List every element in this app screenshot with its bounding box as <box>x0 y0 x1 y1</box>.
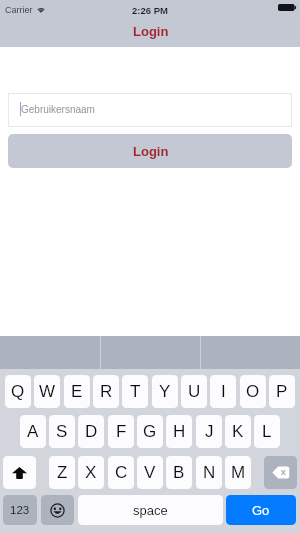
staticText: N <box>203 463 216 482</box>
button[interactable]: E <box>64 375 90 408</box>
button[interactable]: W <box>34 375 60 408</box>
button[interactable]: N <box>196 456 222 489</box>
staticText: A <box>27 422 39 441</box>
button[interactable]: X <box>78 456 104 489</box>
staticText: Q <box>11 382 25 401</box>
button[interactable]: R <box>93 375 119 408</box>
staticText: C <box>115 463 128 482</box>
staticText: X <box>85 463 97 482</box>
button[interactable]: O <box>240 375 266 408</box>
button[interactable]: 123 <box>3 495 37 525</box>
staticText: G <box>143 422 157 441</box>
button[interactable]: D <box>78 415 104 448</box>
button[interactable]: T <box>122 375 148 408</box>
staticText: Go <box>252 503 270 518</box>
button[interactable]: J <box>196 415 222 448</box>
staticText: V <box>144 463 156 482</box>
staticText: H <box>173 422 186 441</box>
staticText: L <box>262 422 272 441</box>
staticText: 2:26 PM <box>132 5 168 16</box>
staticText: F <box>116 422 127 441</box>
button[interactable]: P <box>269 375 295 408</box>
button[interactable]: L <box>254 415 280 448</box>
staticText: Z <box>57 463 68 482</box>
staticText: 123 <box>10 504 30 517</box>
button[interactable]: K <box>225 415 251 448</box>
staticText: J <box>205 422 214 441</box>
staticText: M <box>231 463 246 482</box>
staticText: space <box>133 503 168 518</box>
staticText: K <box>232 422 244 441</box>
staticText: Login <box>133 144 169 159</box>
button[interactable]: G <box>137 415 163 448</box>
button[interactable]: Backspace <box>264 456 297 489</box>
button[interactable]: Gebruikersnaam <box>8 93 292 127</box>
staticText: E <box>71 382 83 401</box>
staticText: T <box>130 382 141 401</box>
staticText: Carrier <box>5 5 33 15</box>
button[interactable]: Emoji <box>41 495 74 525</box>
button[interactable]: B <box>166 456 192 489</box>
button[interactable]: M <box>225 456 251 489</box>
button[interactable]: Login <box>8 134 292 168</box>
button[interactable]: H <box>166 415 192 448</box>
button[interactable]: A <box>20 415 46 448</box>
button[interactable]: S <box>49 415 75 448</box>
staticText: I <box>221 382 226 401</box>
staticText: P <box>276 382 288 401</box>
staticText: U <box>188 382 201 401</box>
button[interactable]: U <box>181 375 207 408</box>
button[interactable]: I <box>210 375 236 408</box>
staticText: R <box>100 382 113 401</box>
staticText: W <box>39 382 56 401</box>
staticText: Gebruikersnaam <box>21 104 95 115</box>
button[interactable]: Y <box>152 375 178 408</box>
button[interactable]: F <box>108 415 134 448</box>
staticText: Y <box>159 382 171 401</box>
button[interactable]: Q <box>5 375 31 408</box>
button[interactable]: C <box>108 456 134 489</box>
staticText: S <box>56 422 68 441</box>
staticText: D <box>85 422 98 441</box>
button[interactable]: Shift <box>3 456 36 489</box>
staticText: O <box>246 382 260 401</box>
button[interactable]: V <box>137 456 163 489</box>
button[interactable]: space <box>78 495 223 525</box>
button[interactable]: Go <box>226 495 296 525</box>
button[interactable]: Z <box>49 456 75 489</box>
staticText: B <box>173 463 185 482</box>
staticText: Login <box>133 24 169 39</box>
